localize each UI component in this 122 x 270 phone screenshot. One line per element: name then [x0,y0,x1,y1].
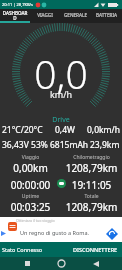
staticText: DASHBOARD [1,10,29,21]
staticText: BATTERIA [92,12,121,18]
staticText: 0,0km/h [87,124,120,136]
button[interactable]: DASHBOARD [0,9,30,21]
staticText: GENERALE [61,12,90,18]
staticText: 0,0 [0,47,122,100]
staticText: Drive [0,115,122,125]
staticText: 00:00:00 [0,178,61,192]
staticText: VIAGGI [31,12,59,18]
button[interactable]: Home [53,257,69,270]
staticText: 1208,79km [61,161,122,175]
staticText: Totale [61,193,122,200]
button[interactable]: Ottimizza il tuo viaggio [0,217,122,242]
staticText: 00:03:25 [0,200,61,214]
staticText: Viaggio [0,154,61,161]
staticText: Un regno di gusto a Roma. [20,229,90,236]
staticText: 23,9km [90,139,120,151]
button[interactable]: GENERALE [60,9,91,21]
staticText: Ottimizza il tuo viaggio [16,218,55,223]
staticText: Stato Connesso [2,246,43,253]
button[interactable]: VIAGGI [30,9,60,21]
staticText: 0,00km [0,161,61,175]
staticText: 0,4W [55,124,75,136]
staticText: 19:11:05 [61,178,122,192]
button[interactable]: BATTERIA [91,9,122,21]
staticText: 6815mAh [50,139,89,151]
staticText: 36,43V 53% [2,139,48,151]
staticText: 1208,79km [61,200,122,214]
button[interactable]: DISCONNETTERE [71,244,120,255]
staticText: Uptime [0,193,61,200]
staticText: 21°C/20°C [2,124,43,136]
button[interactable]: Recents [19,257,35,270]
staticText: 20:11 | 28,7KB/s [2,2,33,7]
staticText: DISCONNETTERE [73,246,118,253]
button[interactable]: Back [88,257,104,270]
staticText: km/h [0,88,122,100]
staticText: Chilometraggio [61,154,122,161]
